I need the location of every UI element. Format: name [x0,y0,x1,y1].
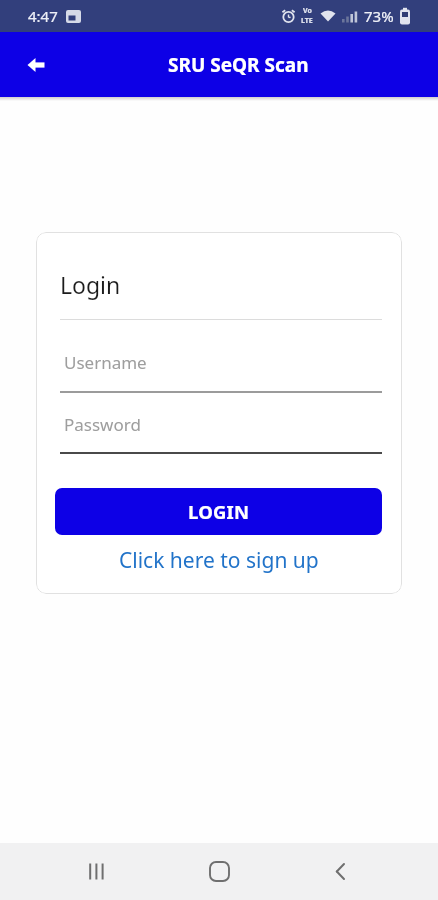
staticText: SRU SeQR Scan [168,52,309,78]
staticText: Login [60,269,121,300]
button[interactable] [18,47,54,83]
button[interactable] [318,849,363,894]
staticText: Vo [303,6,312,16]
button[interactable] [74,849,119,894]
staticText: Username [64,351,147,374]
button[interactable]: LOGIN [55,488,382,535]
button[interactable]: Username [60,340,382,393]
staticText: LTE [301,16,313,26]
staticText: Password [64,413,141,436]
staticText: 73% [364,6,394,26]
staticText: Click here to sign up [119,546,319,575]
button[interactable]: Click here to sign up [119,546,319,575]
button[interactable]: Password [60,402,382,454]
staticText: LOGIN [188,499,250,524]
button[interactable] [197,849,242,894]
staticText: 4:47 [28,6,58,26]
